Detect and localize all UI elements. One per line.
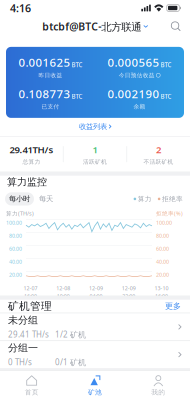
staticText: 每天 — [39, 194, 53, 203]
staticText: 20.00 — [156, 271, 169, 278]
staticText: btcbf@BTC-北方联通 — [42, 19, 141, 34]
staticText: 活跃矿机 — [83, 158, 107, 165]
button[interactable]: 每小时 — [5, 192, 34, 205]
staticText: 未分组 — [8, 314, 38, 326]
staticText: 10:00 — [57, 292, 70, 300]
staticText: 12-09 — [89, 285, 103, 292]
staticText: 收益列表 — [79, 122, 107, 131]
staticText: 算力 — [138, 195, 152, 203]
staticText: 算力监控 — [7, 176, 47, 188]
staticText: 29.41 TH/s — [8, 329, 49, 340]
button[interactable]: 分组一 — [0, 341, 190, 368]
staticText: 拒绝率(%) — [156, 209, 183, 217]
staticText: 0 TH/s — [8, 357, 32, 368]
staticText: 13-10 — [155, 285, 169, 292]
staticText: 1/2 矿机 — [55, 329, 86, 340]
staticText: 0.002190 — [107, 86, 159, 101]
button[interactable]: 更多 — [165, 299, 181, 313]
staticText: 每小时 — [9, 194, 30, 203]
staticText: 20.00 — [9, 271, 22, 278]
staticText: 0.000565 — [107, 54, 159, 70]
staticText: 16:00 — [155, 292, 168, 300]
staticText: BTC — [71, 92, 82, 100]
button[interactable]: 未分组 — [0, 313, 190, 340]
staticText: 1 — [92, 143, 97, 156]
staticText: BTC — [160, 92, 171, 100]
staticText: 60.00 — [9, 245, 22, 252]
staticText: 2 — [156, 143, 161, 156]
button[interactable]: Search — [166, 16, 186, 36]
staticText: 16:00 — [24, 292, 37, 300]
staticText: 80.00 — [156, 232, 169, 239]
staticText: 80.00 — [9, 232, 22, 239]
staticText: 我的 — [151, 388, 165, 396]
staticText: 12-08 — [56, 285, 70, 292]
staticText: 不活跃矿机 — [144, 158, 174, 165]
staticText: 余额 — [133, 103, 145, 110]
staticText: BTC — [160, 61, 171, 69]
staticText: BTC — [71, 61, 82, 69]
staticText: 100.00 — [156, 219, 172, 226]
staticText: 矿机管理 — [8, 299, 52, 313]
staticText: 04:00 — [89, 292, 102, 300]
staticText: 40.00 — [9, 258, 22, 265]
staticText: 100.00 — [6, 219, 22, 226]
staticText: 12-07 — [23, 285, 37, 292]
staticText: 总算力 — [22, 158, 40, 165]
staticText: 0.001625 — [18, 54, 70, 70]
staticText: 29.41TH/s — [9, 143, 53, 156]
button[interactable]: 每天 — [35, 192, 57, 205]
button[interactable]: 收益列表 — [79, 118, 111, 135]
staticText: 22:00 — [122, 292, 135, 300]
staticText: 矿池 — [88, 388, 102, 396]
staticText: 40.00 — [156, 258, 169, 265]
button[interactable]: 我的 — [127, 372, 190, 399]
staticText: 0.108773 — [18, 86, 70, 101]
staticText: 4:16 — [10, 1, 31, 15]
staticText: 昨日收益 — [38, 72, 62, 79]
staticText: 算力(TH/s) — [6, 209, 34, 217]
staticText: 已支付 — [41, 103, 59, 110]
staticText: 分组一 — [8, 342, 38, 354]
staticText: 12-09 — [122, 285, 136, 292]
staticText: 今日预估收益 — [119, 72, 155, 79]
button[interactable]: btcbf@BTC-北方联通 — [42, 16, 148, 37]
staticText: 0/1 矿机 — [55, 357, 86, 368]
staticText: 拒绝率 — [162, 195, 183, 203]
button[interactable]: 矿池 — [63, 372, 127, 399]
staticText: 60.00 — [156, 245, 169, 252]
button[interactable]: 首页 — [0, 372, 63, 399]
staticText: 更多 — [165, 301, 181, 311]
staticText: 首页 — [25, 388, 39, 396]
